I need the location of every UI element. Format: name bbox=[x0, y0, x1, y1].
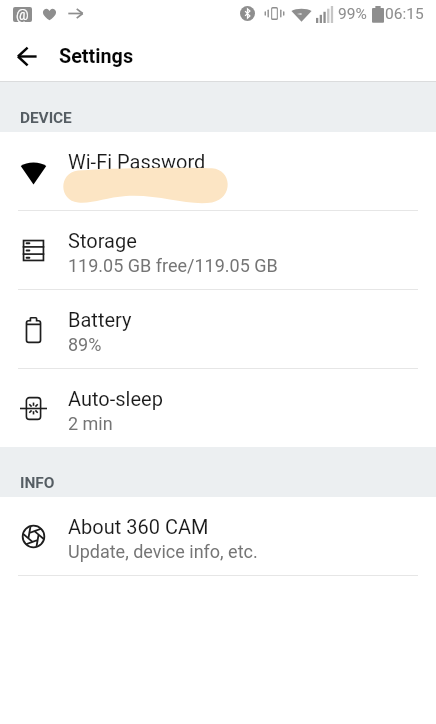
button[interactable]: Storage bbox=[0, 211, 436, 289]
staticText: 06:15 bbox=[385, 5, 424, 23]
button[interactable]: About 360 CAM bbox=[0, 497, 436, 575]
staticText: Storage bbox=[68, 229, 137, 252]
button[interactable]: Auto-sleep bbox=[0, 369, 436, 447]
staticText: Auto-sleep bbox=[68, 387, 163, 410]
staticText: DEVICE bbox=[20, 109, 72, 127]
staticText: About 360 CAM bbox=[68, 515, 209, 538]
staticText: 119.05 GB free/119.05 GB bbox=[68, 255, 278, 276]
staticText: Update, device info, etc. bbox=[68, 541, 258, 562]
button[interactable]: Battery bbox=[0, 290, 436, 368]
staticText: @ bbox=[16, 7, 29, 22]
staticText: Battery bbox=[68, 308, 132, 331]
staticText: Wi-Fi Password bbox=[68, 150, 206, 173]
staticText: 89% bbox=[68, 334, 102, 355]
button[interactable]: Wi-Fi Password bbox=[0, 132, 436, 210]
staticText: 2 min bbox=[68, 413, 113, 434]
staticText: INFO bbox=[20, 474, 55, 492]
button[interactable]: Back bbox=[6, 35, 48, 77]
staticText: Settings bbox=[59, 45, 134, 68]
staticText: 99% bbox=[338, 5, 367, 23]
